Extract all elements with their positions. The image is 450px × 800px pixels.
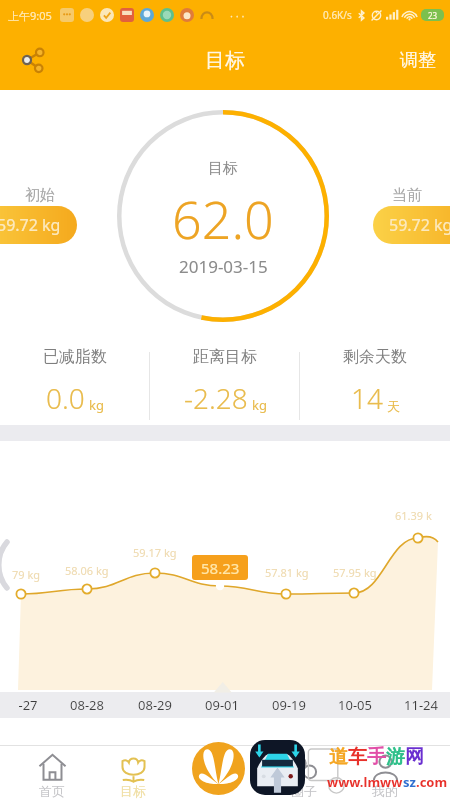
staticText: 首页 — [39, 783, 65, 799]
button[interactable]: 调整 — [392, 41, 444, 80]
staticText: -27 — [18, 696, 38, 714]
staticText: 车 — [348, 745, 367, 769]
staticText: -2.28 — [184, 379, 248, 417]
staticText: 天 — [387, 398, 400, 414]
button[interactable]: 圈子 — [264, 745, 344, 800]
staticText: 调整 — [400, 49, 436, 72]
staticText: 59.72 kg — [389, 214, 450, 236]
staticText: 59.72 kg — [0, 214, 61, 236]
staticText: 58.23 — [201, 558, 240, 578]
staticText: 23 — [428, 10, 438, 21]
button[interactable]: 首页 — [12, 745, 92, 800]
staticText: 我的 — [372, 783, 398, 799]
button[interactable]: 目标 — [93, 745, 173, 800]
staticText: 游 — [386, 745, 405, 769]
staticText: 0.0 — [46, 379, 85, 417]
staticText: 剩余天数 — [343, 347, 407, 367]
staticText: 目标 — [208, 159, 238, 178]
staticText: 08-28 — [70, 696, 104, 714]
staticText: kg — [252, 396, 267, 414]
staticText: 08-29 — [138, 696, 172, 714]
staticText: 09-01 — [205, 696, 239, 714]
staticText: 62.0 — [172, 183, 274, 254]
staticText: 09-19 — [272, 696, 306, 714]
staticText: 圈子 — [291, 783, 317, 799]
button[interactable]: 我的 — [345, 745, 425, 800]
staticText: 手 — [367, 745, 386, 769]
staticText: 当前 — [392, 186, 422, 205]
staticText: 道 — [329, 745, 348, 769]
staticText: kg — [89, 396, 104, 414]
staticText: 距离目标 — [193, 347, 257, 367]
staticText: 网 — [405, 745, 424, 769]
staticText: 0.6K/s — [323, 8, 352, 22]
staticText: sz — [403, 773, 416, 791]
staticText: 初始 — [25, 186, 55, 205]
staticText: .com — [416, 773, 448, 791]
staticText: 11-24 — [404, 696, 438, 714]
button[interactable]: Add weight record — [192, 742, 245, 795]
staticText: 59.17 kg — [133, 545, 177, 560]
staticText: www.lmww — [327, 773, 403, 791]
staticText: 57.95 kg — [333, 565, 377, 580]
staticText: 58.06 kg — [65, 563, 109, 578]
staticText: 57.81 kg — [265, 565, 309, 580]
button[interactable]: Share — [11, 38, 55, 82]
staticText: 目标 — [120, 783, 146, 799]
staticText: 上午9:05 — [8, 8, 52, 23]
staticText: 目标 — [205, 48, 245, 73]
staticText: 2019-03-15 — [179, 255, 268, 278]
staticText: 10-05 — [338, 696, 372, 714]
staticText: 14 — [351, 379, 383, 417]
staticText: 61.39 k — [395, 508, 432, 523]
staticText: 79 kg — [12, 567, 41, 582]
staticText: · · · — [230, 8, 245, 23]
staticText: 已减脂数 — [43, 347, 107, 367]
